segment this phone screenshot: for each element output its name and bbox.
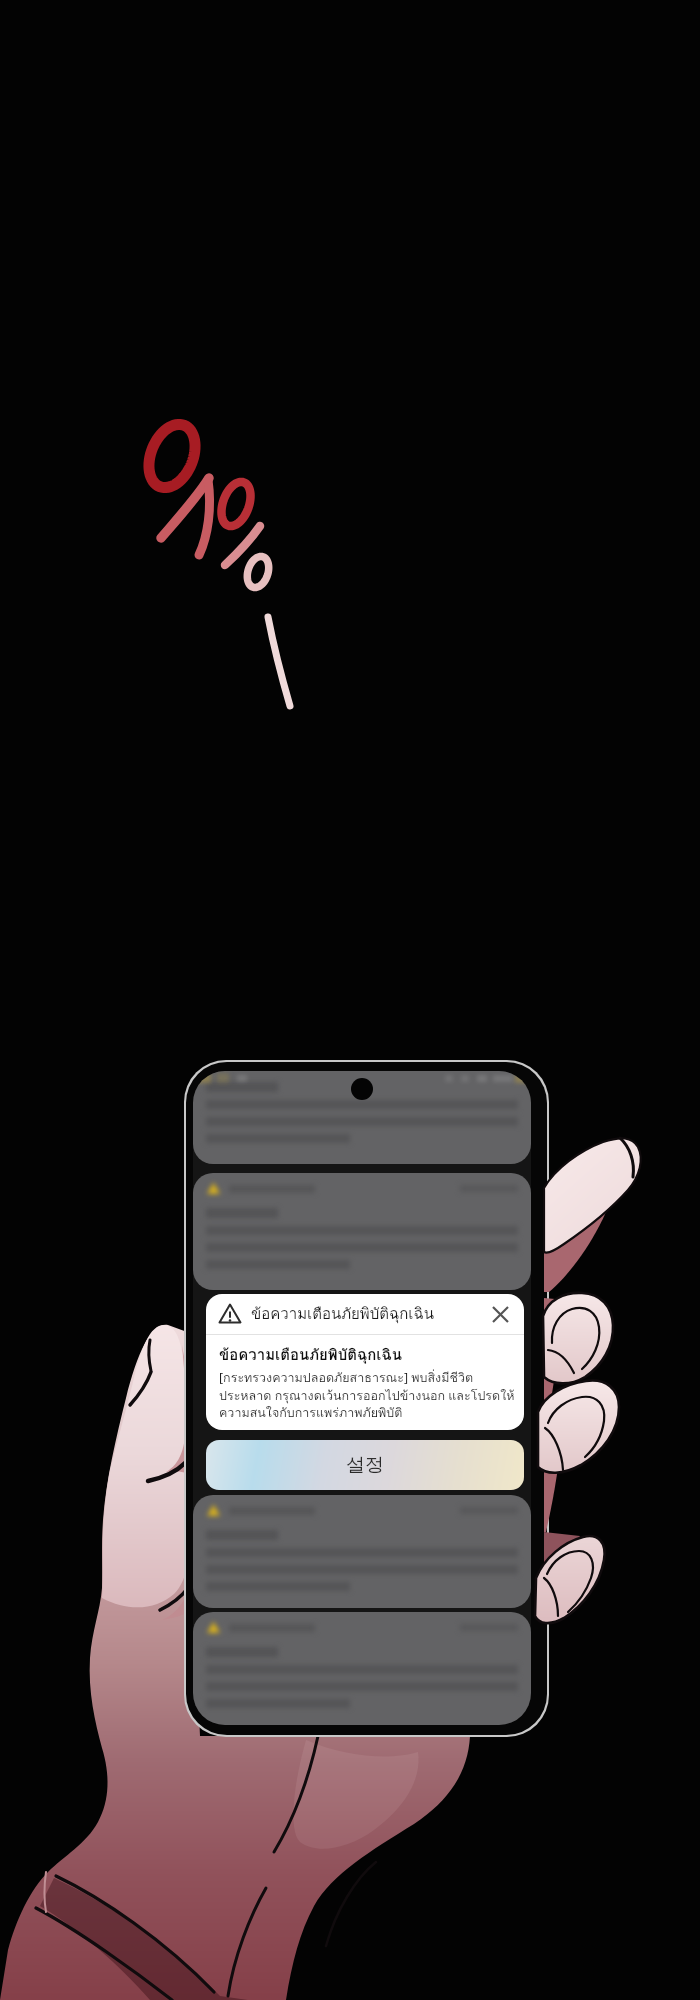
staticText: [กระทรวงความปลอดภัยสาธารณะ] พบสิ่งมีชีวิ… [219,1368,515,1423]
staticText: ข้อความเตือนภัยพิบัติฉุกเฉิน [251,1302,434,1326]
staticText: ข้อความเตือนภัยพิบัติฉุกเฉิน [219,1343,402,1367]
button[interactable]: 설정 [206,1440,524,1490]
staticText: 설정 [346,1453,384,1477]
button[interactable] [193,1071,531,1164]
button[interactable]: ข้อความเตือนภัยพิบัติฉุกเฉิน [206,1294,524,1430]
button[interactable] [193,1173,531,1290]
button[interactable] [193,1495,531,1608]
button[interactable] [193,1612,531,1725]
button[interactable]: Close alert [487,1301,513,1327]
